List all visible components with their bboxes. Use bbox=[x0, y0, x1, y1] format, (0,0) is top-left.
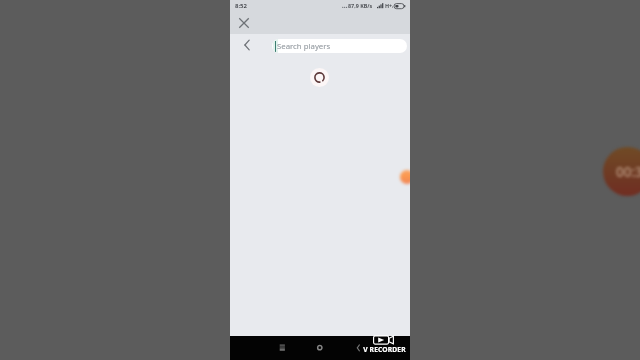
button[interactable]: Home bbox=[312, 341, 326, 355]
button[interactable]: Back bbox=[351, 341, 365, 355]
button[interactable]: Close bbox=[233, 12, 255, 34]
staticText: 00:3 bbox=[616, 163, 640, 181]
button[interactable]: Recorder control bbox=[400, 170, 410, 184]
button[interactable]: Search players bbox=[272, 39, 407, 53]
button[interactable]: Recording timer bbox=[603, 147, 640, 196]
staticText: H+ bbox=[385, 2, 393, 9]
button[interactable]: Back bbox=[233, 34, 255, 56]
staticText: V RECORDER bbox=[363, 345, 406, 354]
staticText: 8:52 bbox=[235, 2, 247, 10]
staticText: Search players bbox=[277, 41, 331, 52]
staticText: 87,9 KB/s bbox=[348, 2, 373, 9]
button[interactable]: Recents bbox=[275, 341, 289, 355]
